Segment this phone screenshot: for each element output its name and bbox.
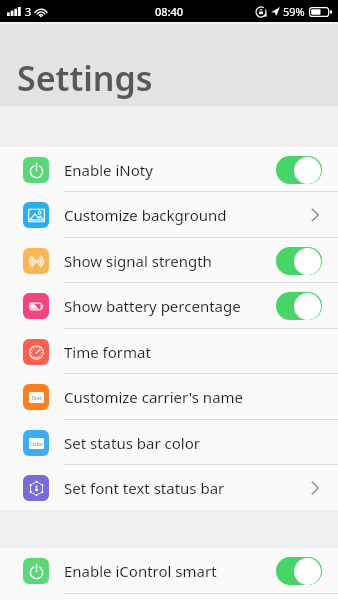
staticText: Show battery percentage [64, 296, 241, 316]
other: Open [308, 205, 322, 225]
staticText: Show signal strength [64, 251, 212, 271]
button[interactable]: Enable iControl smart [0, 548, 338, 594]
button[interactable]: On [276, 292, 322, 320]
button[interactable]: On [276, 156, 322, 184]
staticText: Customize carrier's name [64, 387, 244, 407]
button[interactable]: Show signal strength [0, 238, 338, 283]
staticText: Time format [64, 342, 151, 362]
button[interactable]: Color [0, 420, 338, 465]
button[interactable]: Customize background [0, 192, 338, 238]
staticText: 08:40 [155, 4, 184, 19]
staticText: 3 [25, 4, 32, 19]
button[interactable]: Enable iNoty [0, 147, 338, 192]
button[interactable]: Text [0, 374, 338, 420]
staticText: 59% [283, 4, 305, 19]
staticText: Set status bar color [64, 433, 200, 453]
button[interactable]: Time format [0, 329, 338, 374]
button[interactable]: On [276, 247, 322, 275]
staticText: Enable iControl smart [64, 561, 217, 581]
button[interactable]: Show battery percentage [0, 283, 338, 329]
staticText: Customize background [64, 205, 227, 225]
staticText: Set font text status bar [64, 478, 225, 498]
staticText: Text [31, 394, 42, 402]
button[interactable]: Set font text status bar [0, 465, 338, 510]
other: Open [308, 478, 322, 498]
staticText: Settings [17, 55, 153, 101]
staticText: Color [29, 440, 44, 448]
staticText: Enable iNoty [64, 160, 153, 180]
button[interactable]: On [276, 557, 322, 585]
